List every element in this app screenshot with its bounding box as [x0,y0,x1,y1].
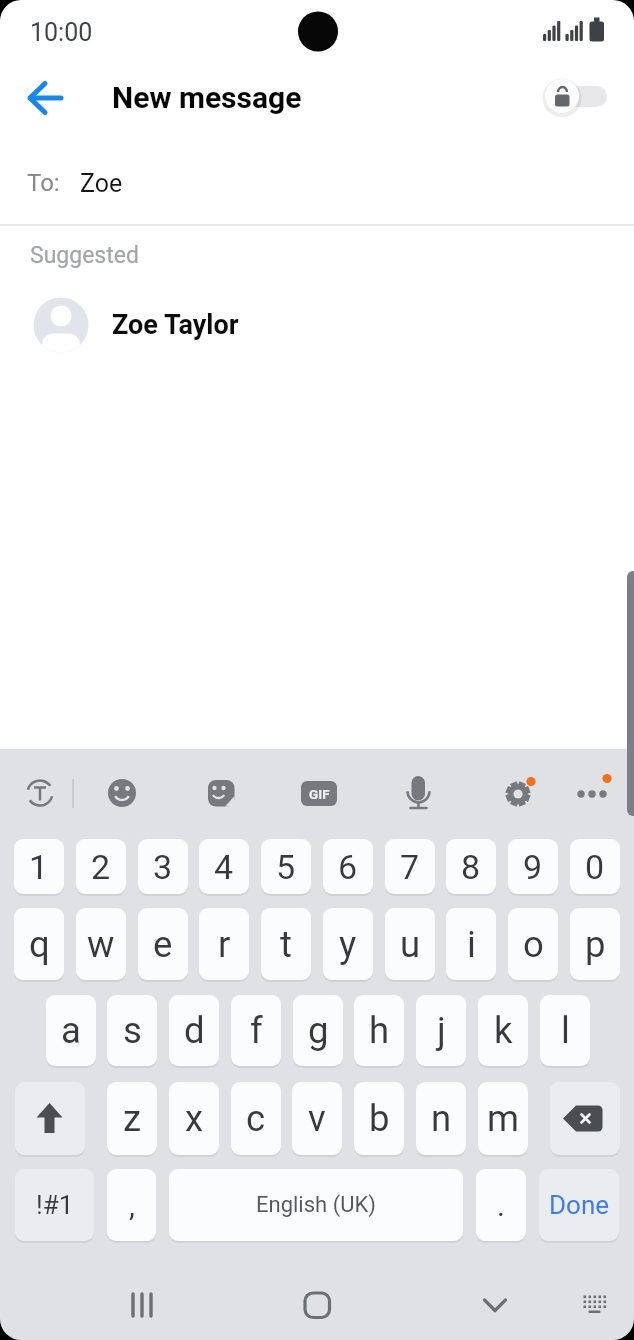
button[interactable]: a [46,995,96,1066]
button[interactable]: u [385,908,435,980]
button[interactable] [20,292,614,358]
staticText: Zoe [80,169,123,198]
staticText: v [308,1097,326,1140]
staticText: o [523,923,544,966]
staticText: Done [549,1190,610,1220]
button[interactable]: l [540,995,590,1066]
button[interactable]: j [416,995,466,1066]
button[interactable]: b [354,1082,404,1155]
button[interactable]: d [169,995,219,1066]
staticText: Suggested [30,242,139,269]
staticText: e [153,923,173,966]
button[interactable]: x [169,1082,219,1155]
staticText: 8 [461,847,481,887]
button[interactable] [110,1275,174,1335]
button[interactable]: k [478,995,528,1066]
button[interactable]: . [476,1169,526,1241]
staticText: 6 [338,847,358,887]
staticText: !#1 [36,1190,74,1220]
staticText: English (UK) [256,1192,376,1218]
staticText: , [129,1188,135,1223]
button[interactable]: s [107,995,157,1066]
button[interactable]: !#1 [15,1169,94,1241]
button[interactable] [285,1275,349,1335]
button[interactable]: e [138,908,188,980]
staticText: 7 [400,847,420,887]
staticText: 9 [523,847,543,887]
button[interactable]: f [231,995,281,1066]
button[interactable] [0,140,634,224]
staticText: s [123,1009,142,1052]
staticText: y [339,923,357,966]
button[interactable]: 5 [261,839,311,894]
staticText: GIF [309,786,330,802]
staticText: d [184,1009,205,1052]
button[interactable]: 7 [385,839,435,894]
staticText: 1 [29,847,49,887]
staticText: 4 [214,847,234,887]
staticText: j [437,1009,446,1052]
button[interactable]: 1 [14,839,64,894]
staticText: w [87,923,115,966]
button[interactable]: 6 [323,839,373,894]
staticText: p [585,923,606,966]
button[interactable]: 9 [508,839,558,894]
button[interactable] [544,76,612,116]
button[interactable] [494,769,542,817]
staticText: x [185,1097,204,1140]
staticText: h [369,1009,390,1052]
button[interactable]: g [293,995,343,1066]
button[interactable]: h [354,995,404,1066]
staticText: i [467,923,476,966]
button[interactable] [295,769,343,817]
staticText: 0 [585,847,605,887]
staticText: k [494,1009,513,1052]
button[interactable]: 0 [570,839,620,894]
staticText: n [431,1097,452,1140]
button[interactable]: m [478,1082,528,1155]
button[interactable]: Done [539,1169,619,1241]
button[interactable] [16,769,64,817]
button[interactable] [18,72,70,124]
button[interactable] [15,1082,85,1155]
staticText: 2 [91,847,111,887]
button[interactable] [394,769,442,817]
button[interactable]: English (UK) [169,1169,463,1241]
button[interactable]: v [292,1082,342,1155]
button[interactable]: w [76,908,126,980]
button[interactable] [568,769,616,817]
button[interactable]: 3 [138,839,188,894]
staticText: u [400,923,421,966]
button[interactable] [550,1082,620,1155]
button[interactable] [463,1275,527,1335]
staticText: l [561,1009,570,1052]
button[interactable] [197,769,245,817]
button[interactable]: i [446,908,496,980]
button[interactable]: p [570,908,620,980]
staticText: 3 [153,847,173,887]
staticText: 5 [276,847,296,887]
button[interactable]: q [14,908,64,980]
button[interactable]: c [231,1082,281,1155]
staticText: a [61,1009,81,1052]
button[interactable]: 4 [199,839,249,894]
button[interactable]: o [508,908,558,980]
staticText: g [308,1009,329,1052]
staticText: q [29,923,50,966]
staticText: . [497,1188,505,1223]
button[interactable] [570,1283,618,1331]
button[interactable]: n [416,1082,466,1155]
button[interactable]: 8 [446,839,496,894]
staticText: b [369,1097,390,1140]
button[interactable]: z [107,1082,157,1155]
button[interactable]: r [199,908,249,980]
button[interactable]: , [107,1169,156,1241]
button[interactable]: t [261,908,311,980]
staticText: m [487,1097,520,1140]
button[interactable]: y [323,908,373,980]
staticText: r [218,923,231,966]
button[interactable]: 2 [76,839,126,894]
staticText: z [123,1097,142,1140]
staticText: c [246,1097,266,1140]
button[interactable] [98,769,146,817]
